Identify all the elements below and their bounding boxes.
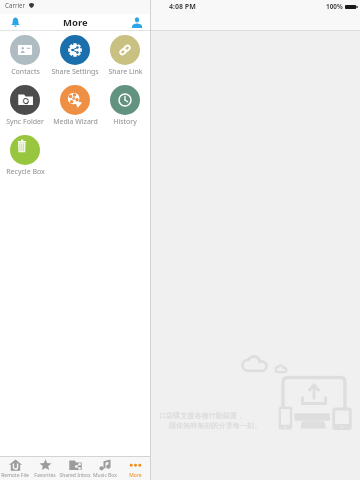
button[interactable]: Shared Inbox bbox=[60, 457, 90, 480]
button[interactable]: Share Link bbox=[100, 35, 150, 85]
staticText: Remote File bbox=[1, 472, 29, 479]
button[interactable]: Music Box bbox=[90, 457, 120, 480]
button[interactable]: Notifications bbox=[6, 14, 24, 30]
staticText: Media Wizard bbox=[53, 117, 98, 127]
staticText: Carrier bbox=[5, 1, 26, 9]
staticText: Sync Folder bbox=[6, 117, 44, 127]
staticText: More bbox=[63, 16, 88, 29]
staticText: 口袋碟支援各種行動裝置， bbox=[159, 411, 245, 420]
button[interactable]: Favorites bbox=[30, 457, 60, 480]
staticText: 4:08 PM bbox=[169, 2, 196, 12]
staticText: Share Link bbox=[108, 67, 143, 77]
button[interactable]: History bbox=[100, 85, 150, 135]
button[interactable]: More bbox=[120, 457, 150, 480]
staticText: Contacts bbox=[11, 67, 40, 77]
staticText: History bbox=[113, 117, 137, 127]
button[interactable]: Sync Folder bbox=[0, 85, 50, 135]
staticText: Music Box bbox=[93, 472, 117, 479]
button[interactable]: Share Settings bbox=[50, 35, 100, 85]
staticText: Favorites bbox=[34, 472, 56, 479]
button[interactable]: Account bbox=[128, 14, 146, 30]
staticText: 讓你無時無刻的分享每一刻。 bbox=[169, 421, 262, 430]
staticText: More bbox=[129, 472, 142, 479]
staticText: Recycle Box bbox=[6, 167, 45, 177]
button[interactable]: Contacts bbox=[0, 35, 50, 85]
button[interactable]: Recycle Box bbox=[0, 135, 50, 185]
staticText: Shared Inbox bbox=[59, 472, 91, 479]
button[interactable]: Remote File bbox=[0, 457, 30, 480]
staticText: 100% bbox=[326, 2, 343, 11]
button[interactable]: Media Wizard bbox=[50, 85, 100, 135]
staticText: Share Settings bbox=[51, 67, 99, 77]
